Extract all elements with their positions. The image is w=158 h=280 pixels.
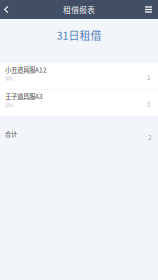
staticText: 王子道具服A3: [5, 92, 43, 101]
staticText: 31日租借: [56, 27, 101, 43]
staticText: 1: [147, 99, 151, 108]
staticText: 2: [148, 132, 152, 142]
staticText: 租借报表: [63, 4, 95, 15]
button[interactable]: 王子道具服A3: [0, 90, 158, 116]
button[interactable]: 小丑道具服A12: [0, 63, 158, 89]
staticText: 合计: [5, 129, 17, 138]
staticText: 50%: [5, 102, 13, 108]
staticText: 小丑道具服A12: [5, 65, 47, 74]
staticText: 50%: [5, 76, 13, 82]
button[interactable]: Menu: [142, 0, 158, 19]
button[interactable]: Back: [0, 0, 16, 19]
staticText: 1: [147, 72, 151, 82]
